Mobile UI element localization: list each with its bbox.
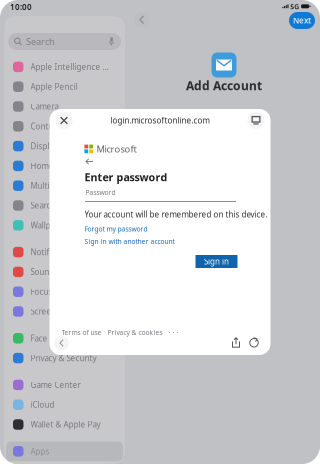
button[interactable]: Apple Pencil: [6, 77, 123, 97]
button[interactable]: Close: [55, 112, 72, 129]
button[interactable]: Back: [54, 335, 69, 350]
button[interactable]: Back: [134, 12, 149, 27]
button[interactable]: Focus: [6, 282, 123, 302]
button[interactable]: iCloud: [6, 395, 123, 415]
staticText: Password: [85, 188, 115, 197]
staticText: Wallet & Apple Pay: [30, 419, 100, 430]
button[interactable]: Screen Time: [6, 302, 123, 321]
button[interactable]: Home Screen & App Library: [6, 156, 123, 176]
button[interactable]: Notifications: [6, 242, 123, 262]
staticText: Privacy & Security: [30, 353, 96, 363]
staticText: Home Screen & App Library: [30, 161, 109, 171]
button[interactable]: Reload: [245, 334, 262, 351]
staticText: Privacy & cookies: [107, 328, 162, 337]
staticText: Forgot my password: [84, 224, 147, 233]
staticText: login.microsoftonline.com: [110, 115, 209, 126]
staticText: Microsoft: [96, 143, 136, 155]
staticText: Multitasking & Gestures: [30, 180, 109, 191]
staticText: Sign in with another account: [84, 237, 174, 246]
button[interactable]: Game Center: [6, 375, 123, 395]
button[interactable]: Control Center: [6, 116, 123, 136]
staticText: Game Center: [30, 380, 80, 390]
staticText: Apps: [30, 446, 49, 457]
staticText: Camera: [30, 101, 58, 112]
staticText: Add Account: [186, 77, 262, 93]
staticText: 10:00: [10, 1, 32, 12]
button[interactable]: Sign in with another account: [84, 237, 174, 246]
staticText: Apple Intelligence & Siri: [30, 62, 109, 72]
button[interactable]: Forgot my password: [84, 224, 147, 233]
button[interactable]: Wallet & Apple Pay: [6, 415, 123, 434]
button[interactable]: Privacy & Security: [6, 348, 123, 368]
staticText: Search: [26, 35, 55, 48]
staticText: Apple Pencil: [30, 81, 77, 92]
staticText: Display & Brightness: [30, 141, 108, 151]
staticText: Notifications: [30, 247, 78, 257]
staticText: Enter password: [84, 170, 167, 184]
staticText: iCloud: [30, 399, 54, 410]
button[interactable]: Apple Intelligence & Siri: [6, 57, 123, 77]
staticText: Terms of use: [61, 328, 101, 337]
staticText: Search: [30, 200, 55, 211]
button[interactable]: Page settings: [247, 112, 264, 129]
button[interactable]: Share: [227, 334, 244, 351]
button[interactable]: Multitasking & Gestures: [6, 176, 123, 196]
button[interactable]: Camera: [6, 97, 123, 116]
button[interactable]: Face ID & Passcode: [6, 328, 123, 348]
button[interactable]: Search: [6, 196, 123, 215]
staticText: Sounds: [30, 267, 58, 277]
button[interactable]: Apps: [6, 441, 123, 461]
staticText: Control Center: [30, 121, 86, 132]
button[interactable]: Display & Brightness: [6, 136, 123, 156]
staticText: Wallpaper: [30, 220, 67, 231]
button[interactable]: Sounds: [6, 262, 123, 282]
staticText: Sign in: [204, 256, 229, 267]
staticText: Next: [293, 15, 311, 26]
staticText: 5G: [290, 2, 299, 11]
staticText: Your account will be remembered on this …: [84, 209, 267, 220]
staticText: · · ·: [168, 328, 178, 337]
button[interactable]: Sign in: [195, 255, 237, 268]
button[interactable]: Wallpaper: [6, 215, 123, 235]
staticText: Screen Time: [30, 306, 76, 317]
staticText: Focus: [30, 286, 52, 297]
staticText: Face ID & Passcode: [30, 333, 104, 344]
button[interactable]: Next: [289, 12, 315, 29]
